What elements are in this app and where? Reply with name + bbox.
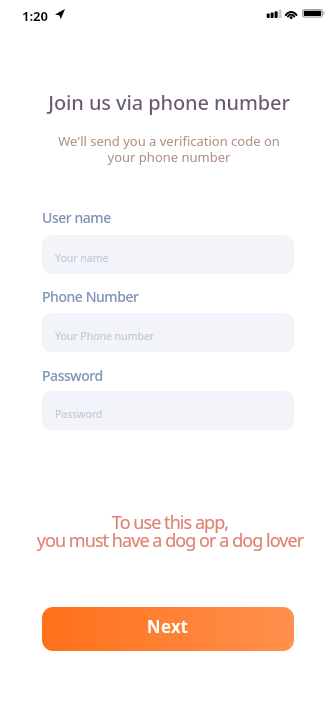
button[interactable]: Next	[42, 607, 294, 651]
other: Location	[55, 9, 65, 19]
staticText: User name	[42, 208, 111, 227]
staticText: Join us via phone number	[1, 89, 336, 116]
staticText: Password	[42, 366, 103, 385]
staticText: Your name	[55, 251, 109, 265]
staticText: To use this app, you must have a dog or …	[2, 510, 336, 552]
staticText: We'll send you a verification code on yo…	[1, 132, 336, 165]
staticText: Next	[147, 615, 189, 638]
staticText: Phone Number	[42, 287, 139, 306]
staticText: Your Phone number	[55, 329, 155, 343]
button[interactable]: Password	[42, 391, 294, 430]
other: Cellular signal	[266, 9, 280, 18]
staticText: Password	[55, 407, 103, 421]
button[interactable]: Your name	[42, 235, 294, 274]
other: Wi-Fi	[284, 9, 298, 19]
other: Battery	[302, 9, 326, 18]
staticText: 1:20	[22, 7, 48, 25]
button[interactable]: Your Phone number	[42, 313, 294, 352]
